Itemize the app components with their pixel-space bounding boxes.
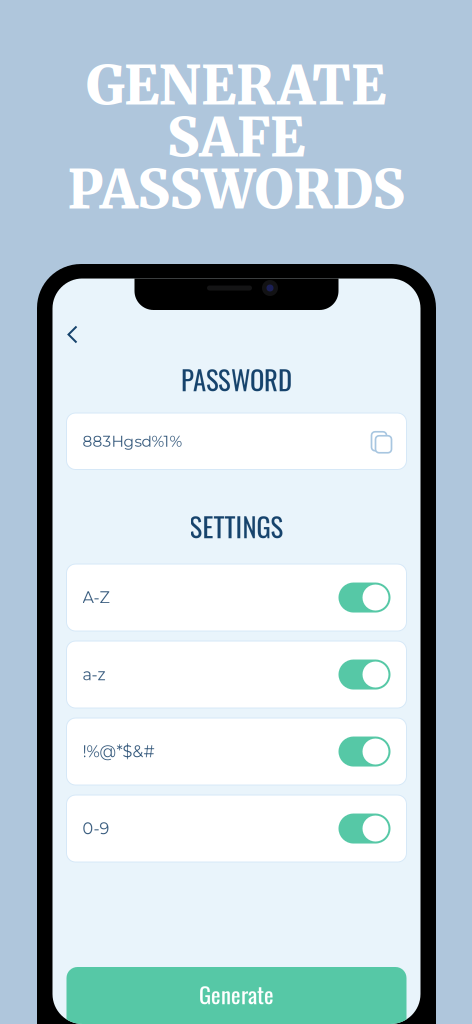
staticText: PASSWORDS: [67, 156, 404, 223]
button[interactable]: Back: [55, 317, 89, 351]
button[interactable]: A-Z: [66, 564, 406, 631]
button[interactable]: Copy password: [366, 428, 392, 454]
staticText: Generate: [199, 977, 274, 1011]
button[interactable]: Generate: [66, 967, 406, 1024]
staticText: 0-9: [82, 819, 109, 838]
staticText: !%@*$&#: [82, 742, 154, 761]
staticText: 883Hgsd%1%: [82, 432, 182, 451]
staticText: PASSWORD: [181, 359, 292, 399]
staticText: SETTINGS: [189, 506, 283, 546]
staticText: A-Z: [82, 588, 109, 607]
staticText: a-z: [82, 665, 105, 684]
button[interactable]: a-z: [66, 641, 406, 708]
staticText: SAFE: [167, 104, 305, 171]
staticText: GENERATE: [86, 52, 386, 119]
button[interactable]: 0-9: [66, 795, 406, 862]
button[interactable]: !%@*$&#: [66, 718, 406, 785]
